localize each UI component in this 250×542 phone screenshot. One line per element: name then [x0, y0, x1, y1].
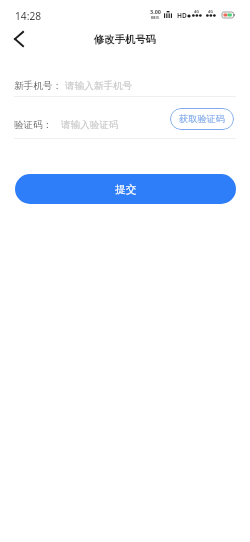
- staticText: 4G: [208, 9, 213, 14]
- staticText: 新手机号：: [14, 80, 62, 92]
- button[interactable]: 提交: [15, 174, 236, 204]
- staticText: 请输入验证码: [61, 119, 119, 131]
- staticText: KB/S: [151, 15, 160, 20]
- staticText: 3.00: [150, 8, 161, 15]
- staticText: 修改手机号码: [94, 33, 156, 46]
- staticText: HD: [177, 11, 187, 20]
- button[interactable]: 获取验证码: [170, 108, 234, 130]
- button[interactable]: 验证码：: [14, 114, 160, 135]
- button[interactable]: 新手机号：: [14, 76, 236, 96]
- button[interactable]: Back: [6, 26, 32, 52]
- staticText: 请输入新手机号: [65, 80, 133, 92]
- staticText: 4G: [194, 9, 199, 14]
- staticText: 提交: [115, 183, 137, 197]
- staticText: 获取验证码: [179, 113, 225, 125]
- staticText: 14:28: [15, 9, 42, 23]
- staticText: 验证码：: [14, 119, 53, 131]
